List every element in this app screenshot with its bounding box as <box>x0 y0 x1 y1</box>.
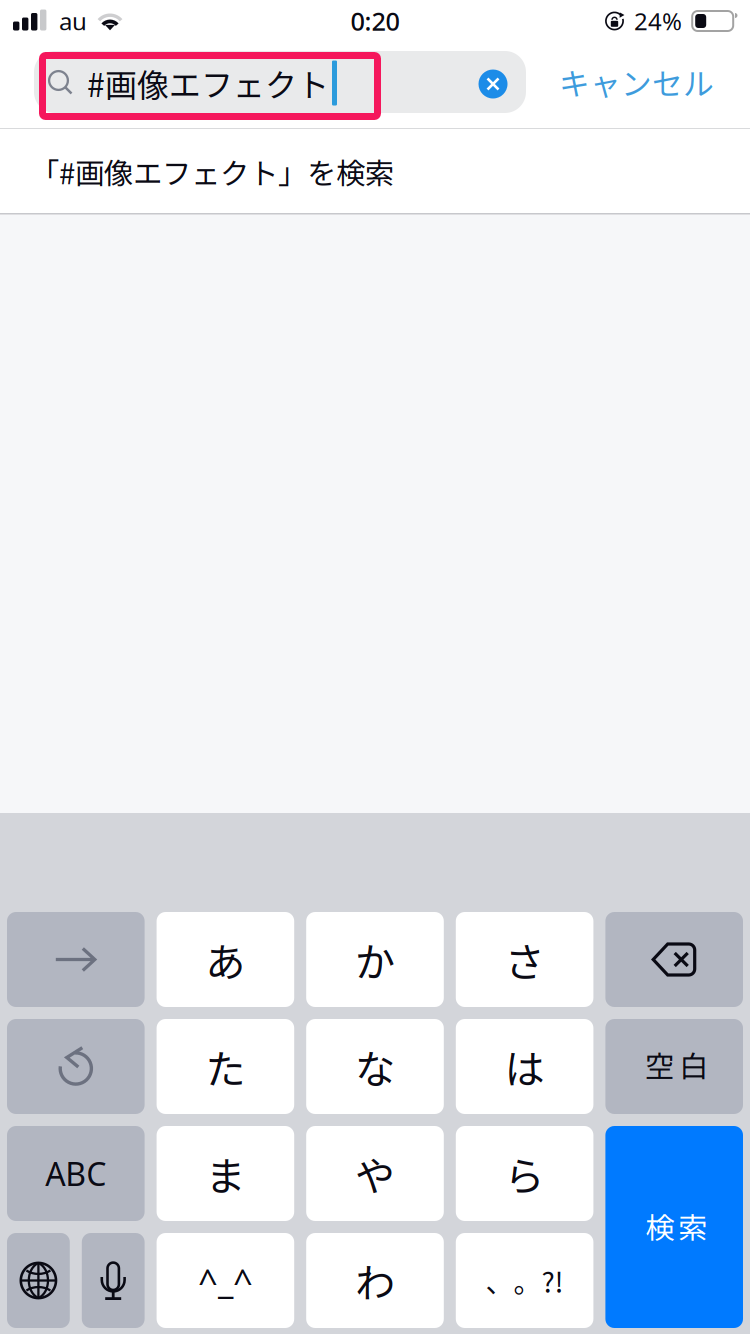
staticText: さ <box>505 930 545 988</box>
button[interactable] <box>605 912 743 1007</box>
staticText: ABC <box>45 1152 106 1195</box>
staticText: 空白 <box>645 1043 708 1086</box>
button[interactable]: 次のキーボード <box>7 1233 70 1328</box>
staticText: ま <box>205 1144 245 1202</box>
staticText: 、。?! <box>486 1260 564 1301</box>
button[interactable]: 空白 <box>605 1019 743 1114</box>
button[interactable]: 検索テキストを消去 <box>471 62 515 106</box>
button[interactable]: た <box>157 1019 294 1114</box>
button[interactable]: ま <box>157 1126 294 1221</box>
staticText: や <box>355 1144 395 1202</box>
staticText: ら <box>505 1144 545 1202</box>
staticText: 0:20 <box>350 4 399 38</box>
button[interactable]: な <box>306 1019 444 1114</box>
staticText: か <box>355 930 395 988</box>
button[interactable]: か <box>306 912 444 1007</box>
staticText: キャンセル <box>559 60 714 104</box>
button[interactable]: さ <box>456 912 593 1007</box>
button[interactable]: は <box>456 1019 593 1114</box>
staticText: わ <box>355 1251 395 1309</box>
button[interactable]: ^_^ <box>157 1233 294 1328</box>
button[interactable]: #画像エフェクト <box>34 51 526 113</box>
button[interactable]: あ <box>157 912 294 1007</box>
staticText: #画像エフェクト <box>87 60 329 106</box>
staticText: au <box>59 5 87 37</box>
button[interactable]: 、。?! <box>456 1233 593 1328</box>
button[interactable]: 検索 <box>605 1126 743 1328</box>
staticText: あ <box>205 930 245 988</box>
button[interactable]: キャンセル <box>535 49 735 115</box>
button[interactable]: 音声入力 <box>82 1233 145 1328</box>
button[interactable] <box>7 1019 145 1114</box>
button[interactable]: わ <box>306 1233 444 1328</box>
button[interactable]: ら <box>456 1126 593 1221</box>
staticText: ^_^ <box>198 1257 253 1304</box>
button[interactable] <box>7 912 145 1007</box>
staticText: 検索 <box>645 1205 707 1247</box>
button[interactable]: や <box>306 1126 444 1221</box>
staticText: 24% <box>634 5 682 37</box>
staticText: は <box>505 1037 545 1095</box>
button[interactable]: ABC <box>7 1126 145 1221</box>
button[interactable]: 「#画像エフェクト」を検索 <box>0 129 750 214</box>
staticText: た <box>205 1037 245 1095</box>
staticText: 「#画像エフェクト」を検索 <box>30 150 394 193</box>
staticText: な <box>355 1037 395 1095</box>
